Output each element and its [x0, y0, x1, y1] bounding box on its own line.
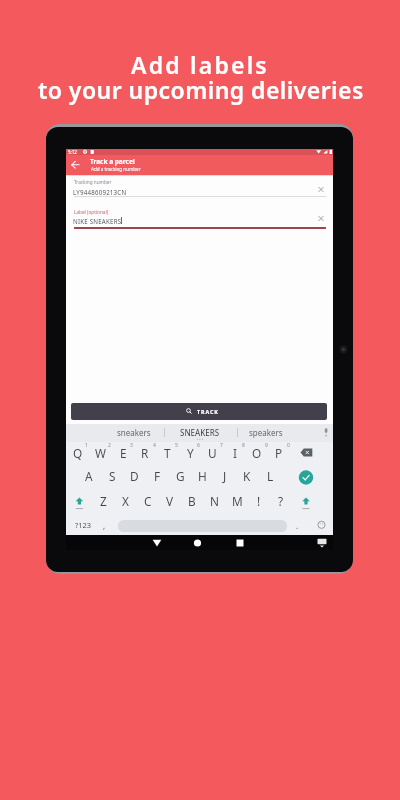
staticText: L [267, 468, 274, 484]
button[interactable]: Q [53, 438, 103, 468]
staticText: 9 [265, 442, 268, 449]
button[interactable] [296, 444, 318, 460]
staticText: 7 [220, 442, 223, 449]
staticText: 6 [197, 442, 200, 449]
button[interactable]: A [64, 461, 114, 491]
staticText: A [85, 468, 93, 484]
button[interactable]: ? [256, 486, 306, 516]
button[interactable] [149, 537, 165, 549]
button[interactable]: T [142, 438, 192, 468]
button[interactable]: J [200, 461, 250, 491]
button[interactable] [315, 183, 327, 195]
staticText: X [122, 493, 129, 509]
button[interactable]: sneakers [82, 421, 186, 443]
button[interactable]: M [212, 486, 262, 516]
staticText: to your upcoming deliveries [38, 74, 364, 105]
button[interactable]: . [279, 514, 316, 536]
staticText: Q [73, 445, 83, 461]
button[interactable]: , [86, 514, 123, 536]
staticText: H [198, 468, 207, 484]
staticText: E [120, 445, 127, 461]
button[interactable] [313, 517, 330, 533]
button[interactable]: D [109, 461, 159, 491]
staticText: P [275, 445, 283, 461]
staticText: 5:12 [68, 149, 77, 155]
button[interactable]: F [132, 461, 182, 491]
button[interactable] [296, 469, 318, 485]
button[interactable] [315, 212, 327, 224]
staticText: I [233, 445, 237, 461]
staticText: 1 [85, 442, 88, 449]
button[interactable]: N [189, 486, 239, 516]
button[interactable]: speakers [214, 421, 318, 443]
staticText: Z [100, 493, 107, 509]
button[interactable]: H [177, 461, 227, 491]
staticText: 0 [287, 442, 290, 449]
staticText: TRACK [197, 408, 219, 415]
staticText: Add labels [131, 49, 269, 80]
button[interactable]: V [145, 486, 195, 516]
staticText: K [243, 468, 251, 484]
staticText: N [210, 493, 219, 509]
staticText: 2 [108, 442, 111, 449]
staticText: Add a tracking number [91, 166, 141, 172]
staticText: G [176, 468, 185, 484]
button[interactable]: O [232, 438, 282, 468]
staticText: LY9448609213CN [73, 188, 127, 196]
staticText: ?123 [75, 520, 92, 530]
staticText: F [154, 468, 161, 484]
staticText: 8 [242, 442, 245, 449]
staticText: V [166, 493, 174, 509]
button[interactable]: E [98, 438, 148, 468]
button[interactable] [296, 494, 316, 510]
staticText: R [141, 445, 149, 461]
button[interactable]: P [254, 438, 304, 468]
button[interactable] [314, 537, 330, 549]
button[interactable] [190, 537, 206, 549]
button[interactable]: B [167, 486, 217, 516]
staticText: U [208, 445, 217, 461]
staticText: Track a parcel [90, 157, 135, 166]
staticText: . [296, 520, 299, 531]
staticText: D [130, 468, 139, 484]
button[interactable]: W [75, 438, 125, 468]
button[interactable]: L [245, 461, 295, 491]
button[interactable]: ?123 [52, 514, 114, 535]
button[interactable]: C [123, 486, 173, 516]
button[interactable] [232, 537, 248, 549]
button[interactable]: SNEAKERS [148, 421, 252, 443]
staticText: , [103, 520, 106, 531]
staticText: C [144, 493, 152, 509]
button[interactable] [70, 494, 90, 510]
button[interactable]: K [222, 461, 272, 491]
button[interactable]: ! [234, 486, 284, 516]
staticText: NIKE SNEAKERS [73, 217, 122, 225]
staticText: T [164, 445, 171, 461]
staticText: 5 [175, 442, 178, 449]
button[interactable]: Z [78, 486, 128, 516]
staticText: 3 [130, 442, 133, 449]
button[interactable]: G [155, 461, 205, 491]
staticText: W [95, 445, 106, 461]
button[interactable] [318, 425, 333, 440]
staticText: S [109, 468, 116, 484]
staticText: J [223, 468, 227, 484]
staticText: sneakers [117, 427, 151, 438]
staticText: SNEAKERS [180, 427, 220, 438]
staticText: Y [187, 445, 194, 461]
staticText: M [232, 493, 243, 509]
button[interactable] [71, 403, 327, 420]
button[interactable]: S [87, 461, 137, 491]
staticText: Tracking number [74, 179, 112, 185]
button[interactable] [68, 157, 83, 172]
button[interactable]: I [210, 438, 260, 468]
staticText: B [188, 493, 196, 509]
staticText: 4 [153, 442, 156, 449]
button[interactable]: X [100, 486, 150, 516]
staticText: ! [257, 493, 261, 509]
button[interactable]: R [120, 438, 170, 468]
button[interactable]: Y [165, 438, 215, 468]
staticText: O [252, 445, 262, 461]
button[interactable]: U [187, 438, 237, 468]
